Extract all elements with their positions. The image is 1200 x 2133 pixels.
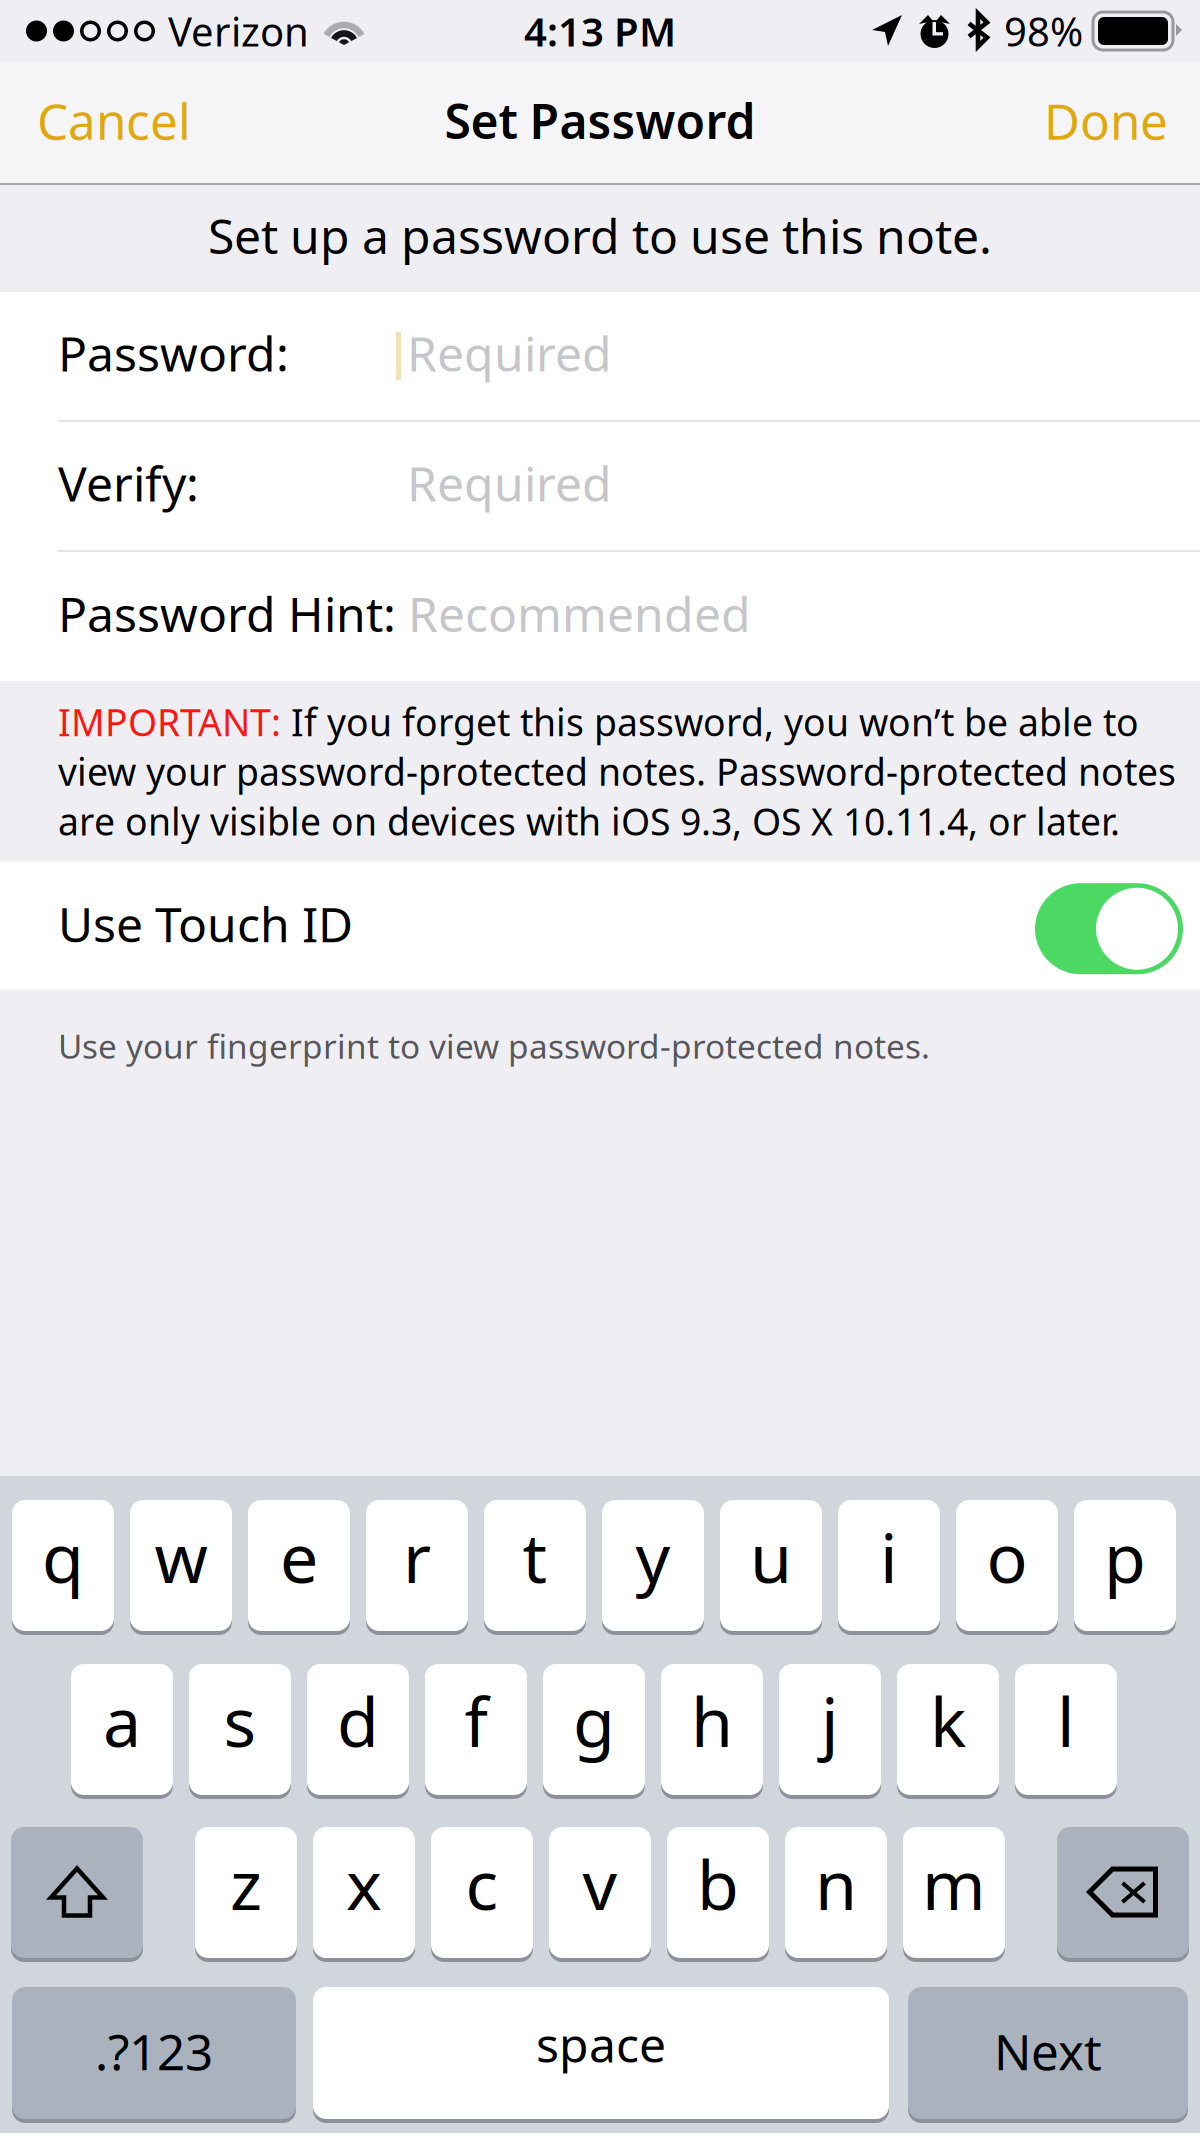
button[interactable]: j [779,1664,881,1795]
button[interactable]: r [366,1500,468,1631]
staticText: Done [1044,88,1168,153]
button[interactable]: i [838,1500,940,1631]
staticText: Verify: [58,451,199,515]
button[interactable]: f [425,1664,527,1795]
staticText: v [582,1838,617,1929]
staticText: h [691,1675,733,1766]
button[interactable]: y [602,1500,704,1631]
button[interactable]: Cancel [0,62,221,183]
button[interactable]: h [661,1664,763,1795]
staticText: m [922,1838,986,1929]
staticText: e [280,1511,318,1602]
staticText: w [154,1511,207,1602]
staticText: IMPORTANT: If you forget this password, … [58,697,1176,846]
staticText: a [103,1675,141,1766]
button[interactable]: s [189,1664,291,1795]
staticText: Use Touch ID [58,892,353,956]
staticText: g [573,1675,615,1766]
staticText: n [815,1838,857,1929]
staticText: t [522,1511,547,1602]
button[interactable]: l [1015,1664,1117,1795]
button[interactable]: Done [1014,62,1200,183]
button[interactable]: z [195,1827,297,1958]
staticText: r [403,1511,431,1602]
button[interactable]: p [1074,1500,1176,1631]
staticText: y [635,1511,670,1602]
staticText: Set Password [444,89,755,152]
staticText: s [223,1675,256,1766]
staticText: Cancel [37,88,191,153]
button[interactable]: t [484,1500,586,1631]
staticText: i [880,1511,898,1602]
button[interactable]: c [431,1827,533,1958]
staticText: l [1057,1675,1075,1766]
staticText: c [465,1838,498,1929]
staticText: Required [407,451,612,515]
button[interactable]: d [307,1664,409,1795]
button[interactable]: n [785,1827,887,1958]
staticText: p [1104,1511,1146,1602]
staticText: space [536,2012,666,2076]
button[interactable]: Shift [11,1827,143,1958]
button[interactable]: u [720,1500,822,1631]
button[interactable]: a [71,1664,173,1795]
button[interactable]: w [130,1500,232,1631]
button[interactable]: o [956,1500,1058,1631]
button[interactable]: b [667,1827,769,1958]
staticText: 98% [1004,4,1083,57]
staticText: Use your fingerprint to view password-pr… [58,1024,930,1068]
button[interactable]: k [897,1664,999,1795]
staticText: k [930,1675,966,1766]
button[interactable]: Delete [1057,1827,1189,1958]
staticText: z [230,1838,262,1929]
button[interactable]: m [903,1827,1005,1958]
staticText: b [697,1838,739,1929]
staticText: j [821,1675,839,1766]
button[interactable]: x [313,1827,415,1958]
staticText: q [42,1511,84,1602]
button[interactable]: q [12,1500,114,1631]
staticText: 4:13 PM [524,4,676,57]
staticText: Password: [58,321,289,385]
button[interactable]: space [313,1987,889,2119]
staticText: Password Hint: [58,582,396,645]
staticText: o [986,1511,1027,1602]
staticText: u [750,1511,792,1602]
button[interactable]: .?123 [12,1987,296,2119]
button[interactable]: Next [908,1987,1188,2119]
staticText: .?123 [95,2018,213,2084]
staticText: Next [994,2018,1102,2084]
staticText: d [337,1675,379,1766]
staticText: Required [407,321,612,385]
button[interactable]: e [248,1500,350,1631]
button[interactable]: v [549,1827,651,1958]
staticText: x [346,1838,382,1929]
staticText: Set up a password to use this note. [208,204,992,267]
button[interactable]: Use Touch ID [1035,883,1183,974]
staticText: Verizon [168,4,309,57]
button[interactable]: g [543,1664,645,1795]
staticText: f [464,1675,487,1766]
staticText: Recommended [396,582,751,645]
